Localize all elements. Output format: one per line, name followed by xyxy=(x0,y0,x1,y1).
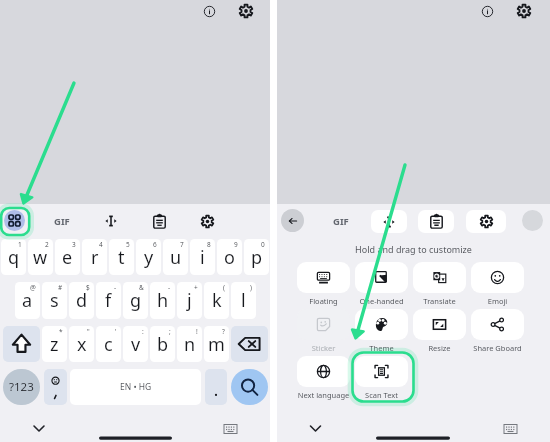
button[interactable]: @ xyxy=(15,282,40,319)
button[interactable]: Emoji xyxy=(471,262,524,306)
button[interactable]: Resize xyxy=(413,309,466,353)
staticText: v xyxy=(131,332,141,357)
button[interactable]: GIF xyxy=(50,213,74,229)
button[interactable]: Share Gboard xyxy=(471,309,524,353)
button[interactable]: ?123 xyxy=(3,369,40,405)
staticText: 9 xyxy=(234,240,238,249)
staticText: n xyxy=(184,332,196,357)
button[interactable]: : xyxy=(123,326,148,362)
button[interactable]: - xyxy=(150,282,175,319)
button[interactable]: ? xyxy=(204,326,229,362)
button[interactable]: 7 xyxy=(163,239,188,275)
button[interactable]: - xyxy=(96,282,121,319)
staticText: Share Gboard xyxy=(471,343,524,353)
button[interactable]: ' xyxy=(96,326,121,362)
button[interactable]: ) xyxy=(231,282,256,319)
button[interactable]: Clipboard xyxy=(418,210,454,233)
button[interactable]: Settings xyxy=(236,1,256,21)
staticText: Hold and drag to customize xyxy=(277,243,550,255)
staticText: 8 xyxy=(207,240,211,249)
staticText: Floating xyxy=(297,296,350,306)
button[interactable]: Search xyxy=(231,369,268,405)
button[interactable]: + xyxy=(177,282,202,319)
button[interactable]: Settings xyxy=(466,210,506,233)
staticText: @ xyxy=(30,283,36,292)
staticText: 5 xyxy=(126,240,130,249)
staticText: y xyxy=(144,245,154,270)
staticText: Scan Text xyxy=(355,390,408,400)
button[interactable]: 2 xyxy=(28,239,53,275)
button[interactable]: Back xyxy=(281,209,304,232)
staticText: t xyxy=(118,245,125,270)
staticText: # xyxy=(58,283,63,292)
staticText: k xyxy=(212,288,222,313)
staticText: i xyxy=(200,245,205,270)
button[interactable]: Info xyxy=(199,1,219,21)
button[interactable]: Translate xyxy=(413,262,466,306)
staticText: * xyxy=(59,327,63,336)
staticText: z xyxy=(50,332,59,357)
button[interactable]: ; xyxy=(150,326,175,362)
button[interactable]: " xyxy=(69,326,94,362)
button[interactable]: Clipboard xyxy=(148,210,170,232)
button[interactable]: Settings xyxy=(514,1,534,21)
button[interactable]: Emoji xyxy=(44,369,67,405)
staticText: ? xyxy=(222,327,225,336)
button[interactable]: 9 xyxy=(217,239,242,275)
button[interactable]: & xyxy=(123,282,148,319)
button[interactable]: 8 xyxy=(190,239,215,275)
button[interactable]: Text editing xyxy=(100,210,122,232)
staticText: Sticker xyxy=(297,343,350,353)
staticText: 0 xyxy=(261,240,265,249)
button[interactable]: Floating xyxy=(297,262,350,306)
staticText: r xyxy=(91,245,99,270)
staticText: Theme xyxy=(355,343,408,353)
button[interactable]: ! xyxy=(177,326,202,362)
button[interactable]: Period xyxy=(205,369,227,405)
staticText: EN • HG xyxy=(120,381,152,393)
staticText: l xyxy=(241,288,246,313)
button[interactable]: 0 xyxy=(244,239,269,275)
button[interactable]: $ xyxy=(69,282,94,319)
staticText: o xyxy=(224,245,235,270)
button[interactable]: 6 xyxy=(136,239,161,275)
button[interactable]: * xyxy=(42,326,67,362)
staticText: : xyxy=(142,327,144,336)
button[interactable]: 1 xyxy=(1,239,26,275)
button[interactable]: GIF xyxy=(329,213,353,229)
staticText: Resize xyxy=(413,343,466,353)
staticText: e xyxy=(62,245,73,270)
button[interactable]: Info xyxy=(477,1,497,21)
staticText: ! xyxy=(196,327,198,336)
button[interactable]: Scan Text xyxy=(355,356,408,400)
button[interactable]: Next language xyxy=(297,356,350,400)
staticText: q xyxy=(8,245,20,270)
button[interactable]: ( xyxy=(204,282,229,319)
staticText: One-handed xyxy=(355,296,408,306)
button[interactable]: Shift xyxy=(3,326,40,362)
staticText: GIF xyxy=(54,215,70,228)
staticText: u xyxy=(170,245,182,270)
staticText: w xyxy=(33,245,48,270)
staticText: 2 xyxy=(45,240,49,249)
staticText: ; xyxy=(169,327,171,336)
staticText: c xyxy=(104,332,113,357)
staticText: - xyxy=(168,283,171,292)
staticText: m xyxy=(208,332,225,357)
staticText: ( xyxy=(223,283,225,292)
button[interactable]: # xyxy=(42,282,67,319)
button[interactable]: EN • HG xyxy=(70,369,201,405)
button[interactable]: 3 xyxy=(55,239,80,275)
button[interactable]: 4 xyxy=(82,239,107,275)
button[interactable]: One-handed xyxy=(355,262,408,306)
staticText: - xyxy=(114,283,117,292)
button[interactable]: 5 xyxy=(109,239,134,275)
button[interactable]: Sticker xyxy=(297,309,350,353)
button[interactable]: Settings xyxy=(196,210,218,232)
button[interactable]: Text editing xyxy=(371,210,407,233)
button[interactable]: Backspace xyxy=(231,326,268,362)
staticText: 7 xyxy=(180,240,184,249)
button[interactable]: Theme xyxy=(355,309,408,353)
staticText: x xyxy=(77,332,87,357)
button[interactable]: Toolbar xyxy=(4,210,25,231)
